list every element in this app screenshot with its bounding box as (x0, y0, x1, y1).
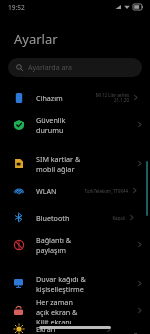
button[interactable]: Cihazım (0, 84, 150, 111)
staticText: WLAN (36, 186, 57, 196)
staticText: Her zaman açık ekran & Kilit ekranı (36, 297, 87, 324)
staticText: Ekran (36, 324, 56, 334)
button[interactable]: Duvar kağıdı & kişiselleştirme (0, 270, 150, 297)
button[interactable]: WLAN (0, 177, 150, 204)
staticText: Kapalı (112, 215, 125, 221)
staticText: Ayarlar (14, 30, 58, 48)
staticText: Güvenlik durumu (36, 115, 87, 135)
button[interactable]: Ayarlarda ara (8, 58, 142, 77)
button[interactable]: Ekran (0, 324, 150, 334)
staticText: 19:52 (8, 3, 25, 12)
staticText: Bluetooth (36, 213, 70, 223)
staticText: Mi 12 Lite series 21.1.20 (95, 92, 129, 103)
staticText: Duvar kağıdı & kişiselleştirme (36, 274, 87, 294)
button[interactable]: Güvenlik durumu (0, 111, 150, 138)
button[interactable]: SIM kartlar & mobil ağlar (0, 150, 150, 177)
staticText: Ayarlarda ara (28, 63, 73, 73)
staticText: Bağlantı & paylaşım (36, 235, 87, 255)
button[interactable]: Bağlantı & paylaşım (0, 231, 150, 258)
staticText: Cihazım (36, 93, 63, 103)
button[interactable]: Bluetooth (0, 204, 150, 231)
staticText: SIM kartlar & mobil ağlar (36, 154, 87, 174)
staticText: TurkTelekom_TT9X44 (84, 188, 128, 194)
button[interactable]: Her zaman açık ekran & Kilit ekranı (0, 297, 150, 324)
